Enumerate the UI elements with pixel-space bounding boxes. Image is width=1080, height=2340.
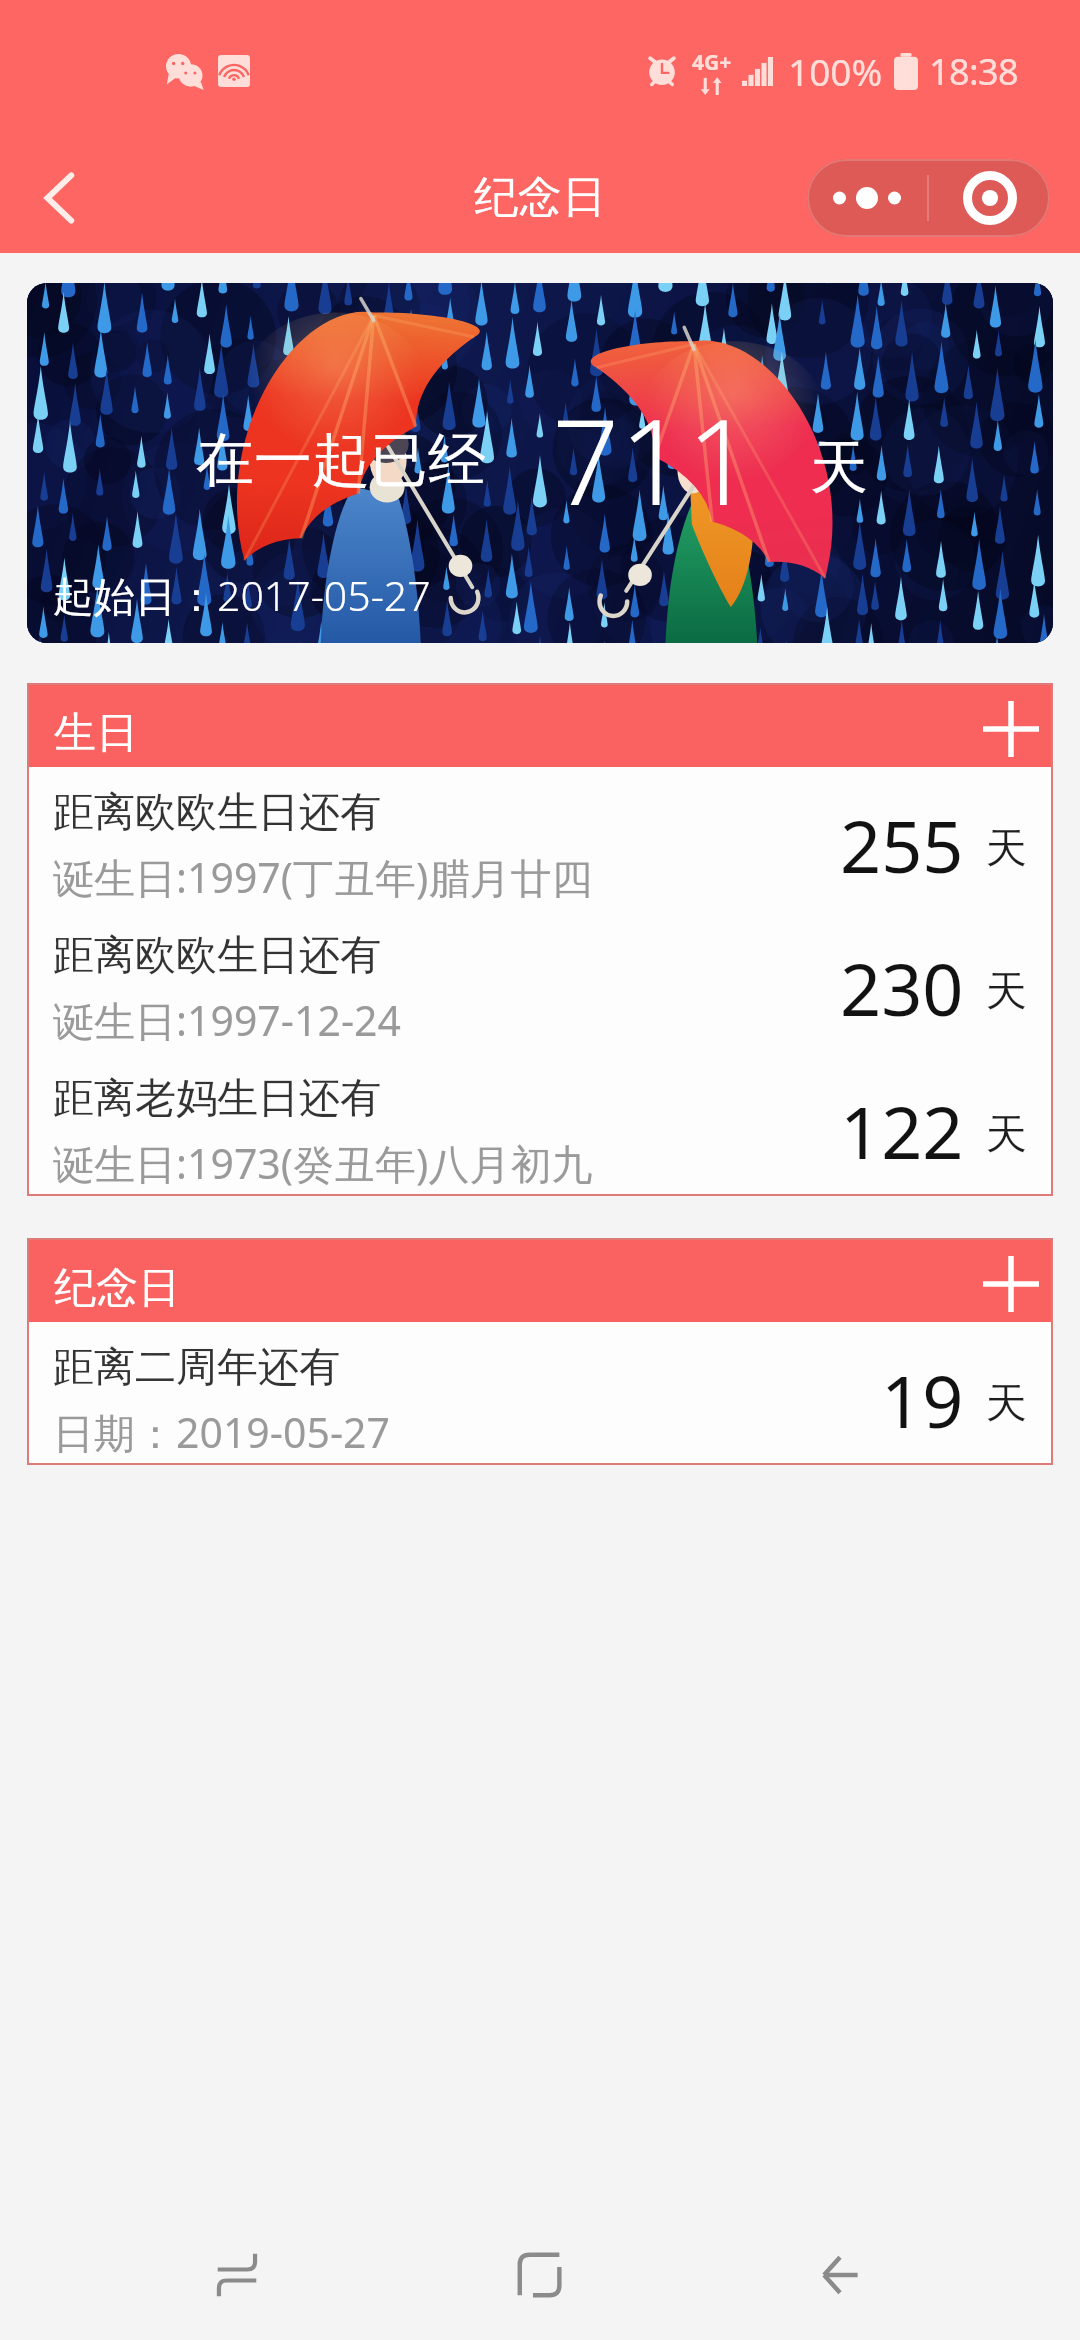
staticText: 诞生日:1997-12-24 xyxy=(53,992,402,1048)
staticText: 4G+ xyxy=(692,48,732,77)
button[interactable]: 生日 xyxy=(27,683,973,767)
button[interactable]: Back xyxy=(778,2220,902,2330)
staticText: 天 xyxy=(810,431,868,504)
button[interactable]: 距离老妈生日还有 xyxy=(27,1053,1053,1196)
staticText: 255 xyxy=(840,796,964,894)
staticText: 诞生日:1997(丁丑年)腊月廿四 xyxy=(53,849,593,905)
staticText: 230 xyxy=(840,939,964,1037)
button[interactable]: 距离二周年还有 xyxy=(27,1322,1053,1465)
staticText: 19 xyxy=(881,1351,964,1449)
staticText: 天 xyxy=(986,823,1027,875)
staticText: 生日 xyxy=(54,707,138,760)
button[interactable]: Recent apps xyxy=(175,2220,299,2330)
button[interactable]: More options and close mini program xyxy=(807,159,1050,237)
button[interactable]: Add 生日 xyxy=(973,683,1053,767)
staticText: 天 xyxy=(986,1109,1027,1161)
button[interactable]: Back xyxy=(16,150,102,246)
staticText: 在一起已经 xyxy=(196,424,486,497)
staticText: 纪念日 xyxy=(474,170,606,225)
staticText: 距离二周年还有 xyxy=(53,1342,340,1394)
staticText: 天 xyxy=(986,1378,1027,1430)
button[interactable]: Home xyxy=(478,2220,602,2330)
button[interactable]: 纪念日 xyxy=(27,1238,973,1322)
staticText: 距离老妈生日还有 xyxy=(53,1073,381,1125)
staticText: 纪念日 xyxy=(54,1262,180,1315)
staticText: 日期：2019-05-27 xyxy=(53,1404,391,1460)
staticText: 起始日：2017-05-27 xyxy=(53,567,431,623)
staticText: 122 xyxy=(840,1082,964,1180)
staticText: 距离欧欧生日还有 xyxy=(53,787,381,839)
staticText: 711 xyxy=(552,379,755,540)
staticText: 18:38 xyxy=(929,47,1019,96)
button[interactable]: 在一起已经 xyxy=(27,283,1053,643)
staticText: 100% xyxy=(788,46,883,96)
button[interactable]: 距离欧欧生日还有 xyxy=(27,767,1053,910)
staticText: 诞生日:1973(癸丑年)八月初九 xyxy=(53,1135,593,1191)
button[interactable]: Add 纪念日 xyxy=(973,1238,1053,1322)
staticText: 距离欧欧生日还有 xyxy=(53,930,381,982)
button[interactable]: 距离欧欧生日还有 xyxy=(27,910,1053,1053)
staticText: 天 xyxy=(986,966,1027,1018)
